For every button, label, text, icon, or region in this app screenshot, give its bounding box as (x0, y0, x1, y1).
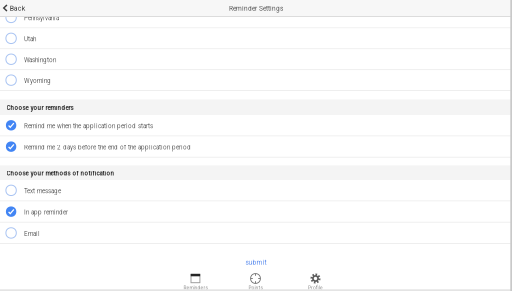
button[interactable]: Reminders (165, 273, 225, 290)
staticText: Remind me 2 days before the end of the a… (24, 144, 191, 151)
button[interactable]: submit (0, 257, 512, 268)
staticText: Reminders (183, 285, 207, 291)
staticText: Back (10, 4, 26, 12)
button[interactable]: Remind me 2 days before the end of the a… (0, 136, 512, 158)
staticText: Email (24, 230, 40, 237)
button[interactable]: Utah (0, 28, 512, 49)
staticText: Profile (308, 285, 323, 291)
staticText: Points (248, 285, 262, 291)
button[interactable]: Pennsylvania (0, 7, 512, 28)
button[interactable]: Wyoming (0, 70, 512, 91)
staticText: Utah (24, 35, 36, 43)
button[interactable]: Profile (285, 273, 345, 290)
staticText: submit (245, 259, 266, 266)
staticText: Choose your methods of notification (7, 170, 115, 177)
staticText: Reminder Settings (229, 5, 283, 12)
staticText: Wyoming (24, 77, 51, 85)
staticText: Text message (24, 187, 61, 195)
button[interactable]: Text message (0, 180, 512, 201)
staticText: Remind me when the application period st… (24, 122, 153, 130)
button[interactable]: Points (225, 273, 285, 290)
button[interactable]: In app reminder (0, 201, 512, 223)
staticText: Choose your reminders (7, 104, 74, 111)
button[interactable]: Back (0, 0, 26, 16)
button[interactable]: Remind me when the application period st… (0, 115, 512, 136)
staticText: Washington (24, 56, 56, 64)
button[interactable]: Washington (0, 49, 512, 70)
staticText: In app reminder (24, 209, 68, 216)
button[interactable]: Email (0, 223, 512, 244)
staticText: Pennsylvania (24, 14, 59, 22)
